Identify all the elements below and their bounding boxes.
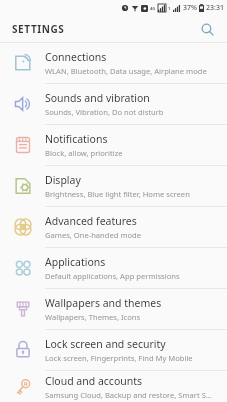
staticText: Sounds, Vibration, Do not disturb [45,107,164,117]
button[interactable]: Sounds and vibration [0,84,227,124]
staticText: Lock screen, Fingerprints, Find My Mobil… [45,353,193,363]
staticText: Wallpapers and themes [45,296,162,310]
staticText: 37% [183,3,197,13]
button[interactable]: Wallpapers and themes [0,289,227,329]
staticText: Display [45,173,81,187]
staticText: Default applications, App permissions [45,271,180,281]
staticText: Games, One-handed mode [45,230,142,240]
staticText: WLAN, Bluetooth, Data usage, Airplane mo… [45,66,207,76]
staticText: Sounds and vibration [45,91,150,105]
staticText: 4G [150,6,156,11]
staticText: Wallpapers, Themes, Icons [45,312,141,322]
staticText: Samsung Cloud, Backup and restore, Smart… [45,390,217,400]
staticText: 23:31 [206,3,224,13]
button[interactable]: Search [195,17,219,41]
staticText: Notifications [45,132,108,146]
button[interactable]: Lock screen and security [0,330,227,370]
button[interactable]: Cloud and accounts [0,371,227,402]
staticText: Connections [45,50,107,64]
button[interactable]: Display [0,166,227,206]
button[interactable]: Advanced features [0,207,227,247]
staticText: Lock screen and security [45,337,166,351]
staticText: Cloud and accounts [45,374,143,388]
staticText: Brightness, Blue light filter, Home scre… [45,189,190,199]
staticText: Advanced features [45,214,137,228]
button[interactable]: Applications [0,248,227,288]
button[interactable]: Connections [0,43,227,83]
button[interactable]: Notifications [0,125,227,165]
staticText: Block, allow, prioritize [45,148,123,158]
staticText: Applications [45,255,106,269]
staticText: 1 [168,6,171,11]
staticText: SETTINGS [12,22,65,36]
